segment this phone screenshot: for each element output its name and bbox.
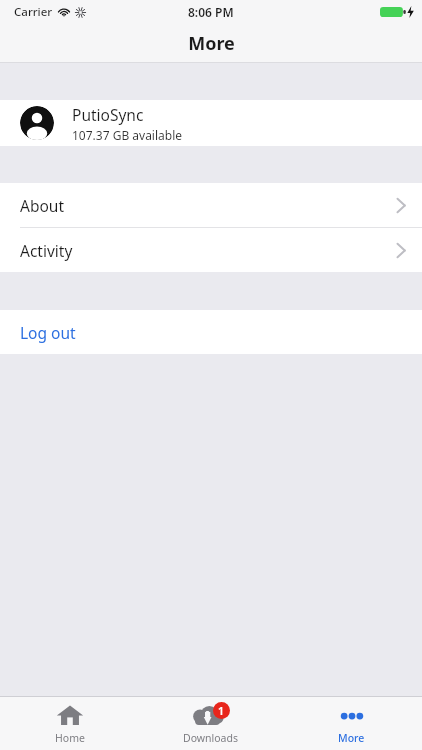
- button[interactable]: More: [281, 697, 422, 750]
- staticText: Carrier: [14, 4, 53, 20]
- staticText: 107.37 GB available: [72, 127, 183, 143]
- staticText: Activity: [20, 240, 73, 261]
- staticText: Log out: [20, 322, 76, 343]
- button[interactable]: PutioSync: [0, 100, 422, 146]
- button[interactable]: Home: [0, 697, 140, 750]
- button[interactable]: Downloads: [140, 697, 281, 750]
- staticText: 1: [218, 704, 225, 718]
- staticText: More: [338, 731, 365, 745]
- staticText: More: [188, 31, 235, 56]
- button[interactable]: About: [0, 183, 422, 227]
- button[interactable]: Log out: [0, 310, 422, 354]
- staticText: PutioSync: [72, 104, 144, 125]
- staticText: About: [20, 195, 64, 216]
- staticText: Downloads: [183, 731, 238, 745]
- staticText: 8:06 PM: [188, 4, 234, 20]
- staticText: Home: [55, 731, 85, 745]
- button[interactable]: Activity: [0, 228, 422, 272]
